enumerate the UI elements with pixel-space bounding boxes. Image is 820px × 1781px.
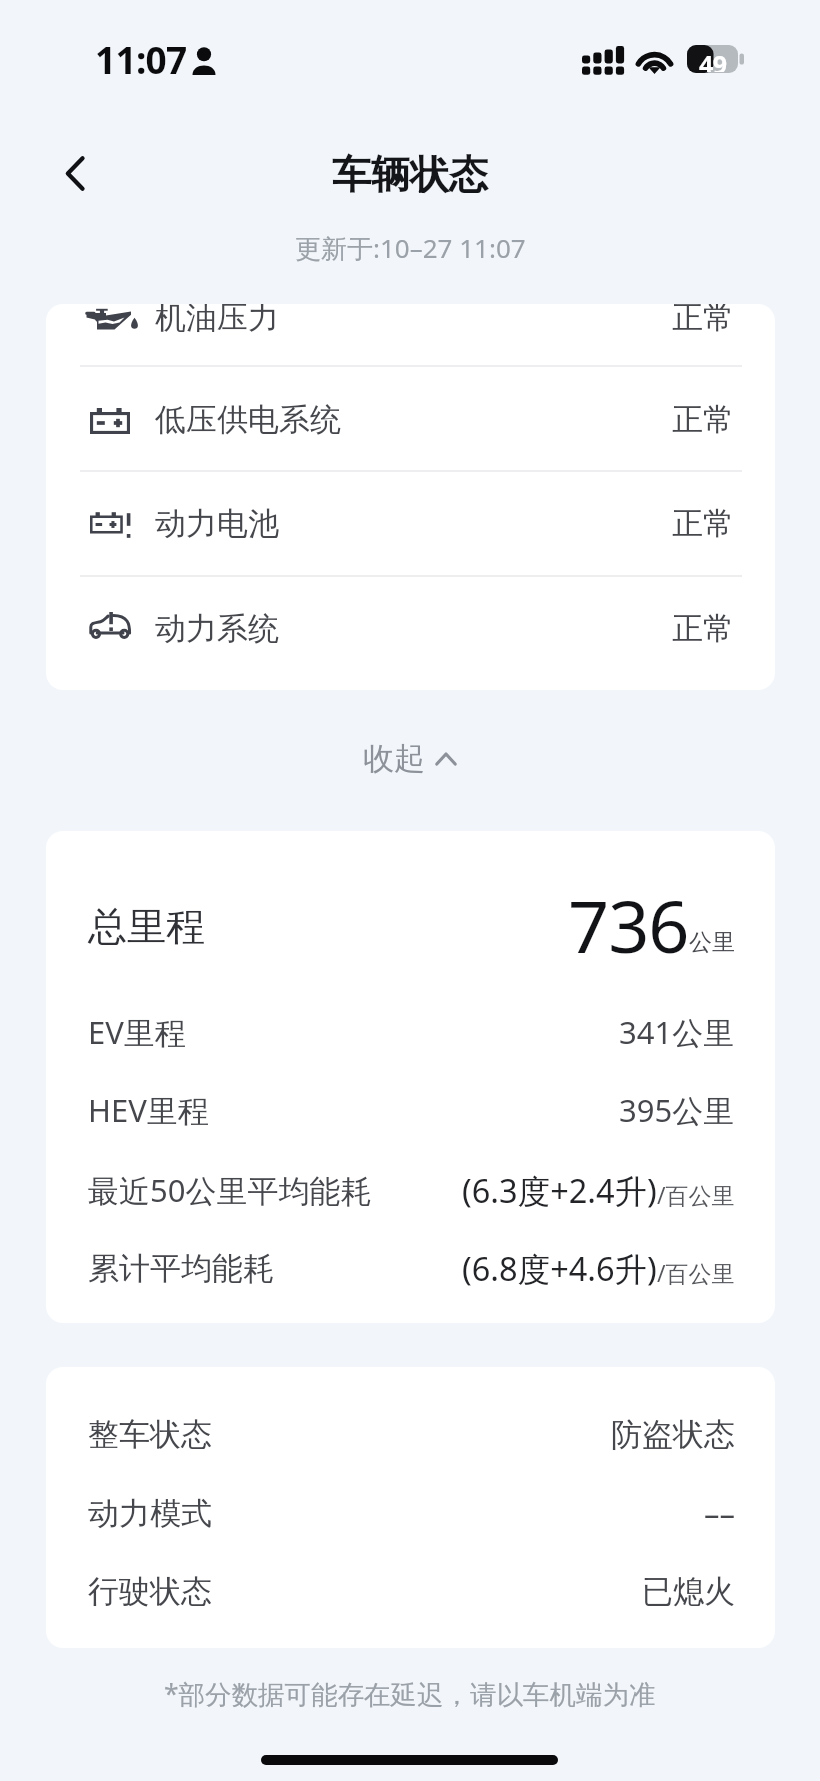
staticText: (6.3度+2.4升) bbox=[462, 1168, 657, 1212]
staticText: (6.8度+4.6升) bbox=[462, 1246, 657, 1290]
staticText: 低压供电系统 bbox=[155, 400, 341, 439]
staticText: 正常 bbox=[672, 400, 734, 439]
staticText: 公里 bbox=[689, 928, 735, 957]
staticText: 395公里 bbox=[619, 1089, 735, 1131]
staticText: 动力电池 bbox=[155, 504, 279, 543]
staticText: 车辆状态 bbox=[332, 150, 488, 199]
staticText: 正常 bbox=[672, 304, 734, 337]
button[interactable]: 机油压力 bbox=[46, 304, 775, 370]
staticText: 11:07 bbox=[95, 34, 187, 84]
staticText: 总里程 bbox=[88, 902, 205, 951]
staticText: 整车状态 bbox=[88, 1415, 212, 1454]
staticText: 736 bbox=[568, 876, 689, 956]
staticText: /百公里 bbox=[657, 1179, 735, 1210]
staticText: 更新于:10–27 11:07 bbox=[295, 230, 526, 266]
staticText: 行驶状态 bbox=[88, 1572, 212, 1611]
staticText: HEV里程 bbox=[88, 1089, 209, 1131]
staticText: 累计平均能耗 bbox=[88, 1249, 274, 1288]
staticText: *部分数据可能存在延迟，请以车机端为准 bbox=[164, 1676, 656, 1712]
staticText: 已熄火 bbox=[642, 1572, 735, 1611]
staticText: 341公里 bbox=[619, 1011, 735, 1053]
staticText: 正常 bbox=[672, 609, 734, 648]
staticText: 防盗状态 bbox=[611, 1415, 735, 1454]
staticText: 49 bbox=[699, 47, 727, 72]
button[interactable]: 低压供电系统 bbox=[46, 367, 775, 472]
staticText: 收起 bbox=[363, 739, 425, 778]
staticText: /百公里 bbox=[657, 1257, 735, 1288]
staticText: 动力系统 bbox=[155, 609, 279, 648]
button[interactable]: 收起 bbox=[340, 722, 480, 794]
staticText: –– bbox=[704, 1492, 735, 1534]
staticText: 正常 bbox=[672, 504, 734, 543]
staticText: 最近50公里平均能耗 bbox=[88, 1169, 372, 1211]
staticText: 动力模式 bbox=[88, 1494, 212, 1533]
button[interactable]: 动力电池 bbox=[46, 471, 775, 576]
staticText: EV里程 bbox=[88, 1011, 186, 1053]
button[interactable]: 动力系统 bbox=[46, 576, 775, 681]
staticText: 机油压力 bbox=[155, 304, 279, 337]
button[interactable]: Back bbox=[46, 144, 104, 202]
